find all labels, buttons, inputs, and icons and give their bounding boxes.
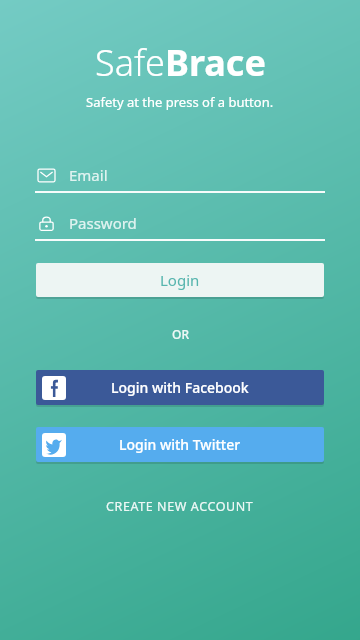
staticText: Login — [160, 270, 200, 290]
staticText: Email — [69, 165, 108, 185]
staticText: OR — [172, 326, 189, 342]
button[interactable]: Email — [35, 159, 325, 193]
other: Facebook — [44, 378, 64, 398]
button[interactable]: Twitter — [36, 427, 324, 462]
other: Twitter — [44, 435, 64, 455]
staticText: Password — [69, 213, 137, 233]
staticText: SafeBrace — [95, 38, 266, 87]
button[interactable]: CREATE NEW ACCOUNT — [36, 492, 324, 520]
staticText: Login with Facebook — [111, 378, 249, 397]
staticText: Login with Twitter — [119, 435, 241, 454]
button[interactable]: Facebook — [36, 370, 324, 405]
button[interactable]: Login — [36, 263, 324, 297]
staticText: CREATE NEW ACCOUNT — [106, 498, 254, 515]
button[interactable]: Password — [35, 207, 325, 241]
staticText: Safety at the press of a button. — [86, 93, 274, 111]
